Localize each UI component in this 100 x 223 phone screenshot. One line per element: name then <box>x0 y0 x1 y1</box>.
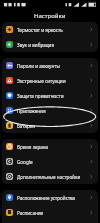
button[interactable]: Защита приватности <box>2 88 98 103</box>
staticText: Настройки <box>34 12 66 20</box>
staticText: Пароли и аккаунты <box>17 63 87 69</box>
other: Open Google <box>89 159 94 164</box>
staticText: Батарея <box>17 123 87 129</box>
staticText: Расположение устройства <box>17 195 87 201</box>
other: Open Батарея <box>89 123 94 128</box>
staticText: Расписание <box>17 210 87 216</box>
staticText: Google <box>17 159 87 165</box>
staticText: Защита приватности <box>17 93 87 99</box>
other: Open Дополнительные настройки <box>89 174 94 179</box>
staticText: Время экрана <box>17 144 87 150</box>
button[interactable]: Расположение устройства <box>2 190 98 205</box>
other: Open Время экрана <box>89 144 94 149</box>
other: Open Расположение устройства <box>89 195 94 200</box>
staticText: Звук и вибрация <box>17 42 87 48</box>
other: Open Звук и вибрация <box>89 42 94 47</box>
button[interactable]: Экстренные ситуации <box>2 73 98 88</box>
other: Open Термостат и яркость <box>89 27 94 32</box>
button[interactable]: Термостат и яркость <box>2 22 98 37</box>
staticText: Термостат и яркость <box>17 27 87 33</box>
other: Open Приложения <box>89 108 94 113</box>
button[interactable]: Дополнительные настройки <box>2 169 98 184</box>
staticText: Экстренные ситуации <box>17 78 87 84</box>
other: Open Экстренные ситуации <box>89 78 94 83</box>
button[interactable]: Батарея <box>2 118 98 133</box>
button[interactable]: Приложения <box>2 103 98 118</box>
other: Open Пароли и аккаунты <box>89 63 94 68</box>
staticText: Приложения <box>17 108 87 114</box>
button[interactable]: Google <box>2 154 98 169</box>
other: Open Защита приватности <box>89 93 94 98</box>
button[interactable]: Пароли и аккаунты <box>2 58 98 73</box>
button[interactable]: Звук и вибрация <box>2 37 98 52</box>
staticText: Дополнительные настройки <box>17 174 87 180</box>
button[interactable]: Расписание <box>2 205 98 220</box>
button[interactable]: Время экрана <box>2 139 98 154</box>
other: Open Расписание <box>89 210 94 215</box>
